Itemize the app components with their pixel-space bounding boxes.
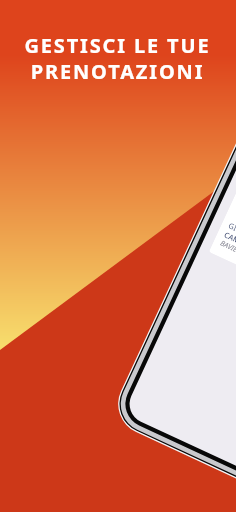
button[interactable]: GI 21 GIU <box>209 190 236 320</box>
staticText: CAMPO 3 <box>223 229 236 253</box>
staticText: GI 21 GIU <box>227 220 236 244</box>
staticText: GESTISCI LE TUE PRENOTAZIONI <box>24 32 211 84</box>
staticText: BAVIERA CLUB <box>218 238 236 266</box>
